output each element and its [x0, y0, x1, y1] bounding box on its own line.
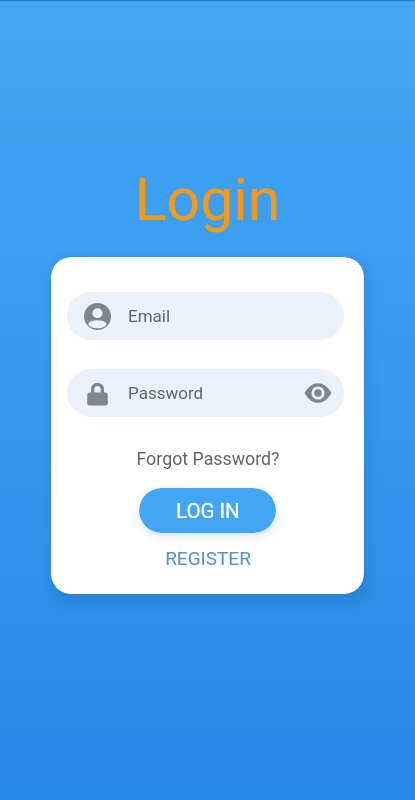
- staticText: Login: [0, 165, 415, 234]
- button[interactable]: LOG IN: [139, 488, 276, 533]
- button[interactable]: Password: [67, 369, 344, 417]
- button[interactable]: REGISTER: [157, 544, 259, 572]
- button[interactable]: Show password: [296, 371, 340, 415]
- button[interactable]: Email: [67, 292, 344, 340]
- staticText: Password: [128, 383, 204, 403]
- staticText: Email: [128, 306, 171, 326]
- button[interactable]: Forgot Password?: [128, 445, 288, 472]
- staticText: LOG IN: [176, 499, 240, 523]
